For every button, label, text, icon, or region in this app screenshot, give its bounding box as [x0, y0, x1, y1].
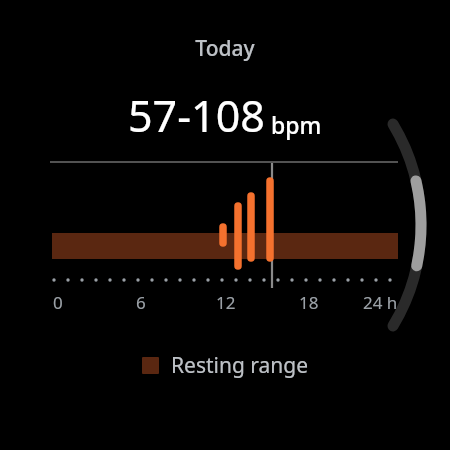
staticText: 6: [136, 291, 146, 314]
staticText: 24 h: [363, 291, 398, 314]
staticText: 18: [299, 291, 319, 314]
staticText: Today: [195, 34, 255, 63]
button[interactable]: [0, 161, 450, 291]
other: Scroll position: [0, 0, 450, 450]
staticText: 57-108: [128, 86, 265, 145]
staticText: 0: [53, 291, 63, 314]
button[interactable]: Resting range: [142, 351, 309, 380]
staticText: bpm: [271, 109, 322, 140]
staticText: Resting range: [171, 351, 309, 380]
staticText: 12: [216, 291, 236, 314]
